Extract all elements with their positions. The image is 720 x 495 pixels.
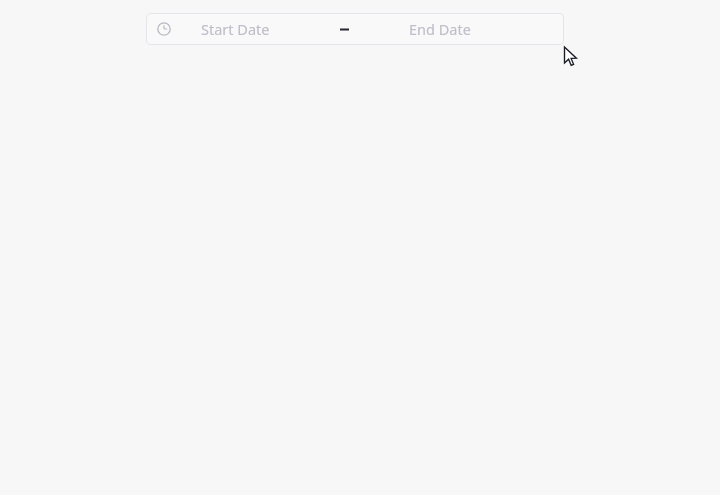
button[interactable]: Select date range	[146, 13, 564, 45]
other: Select date range	[155, 20, 173, 38]
staticText: Start Date	[201, 19, 270, 39]
staticText: End Date	[409, 19, 471, 39]
